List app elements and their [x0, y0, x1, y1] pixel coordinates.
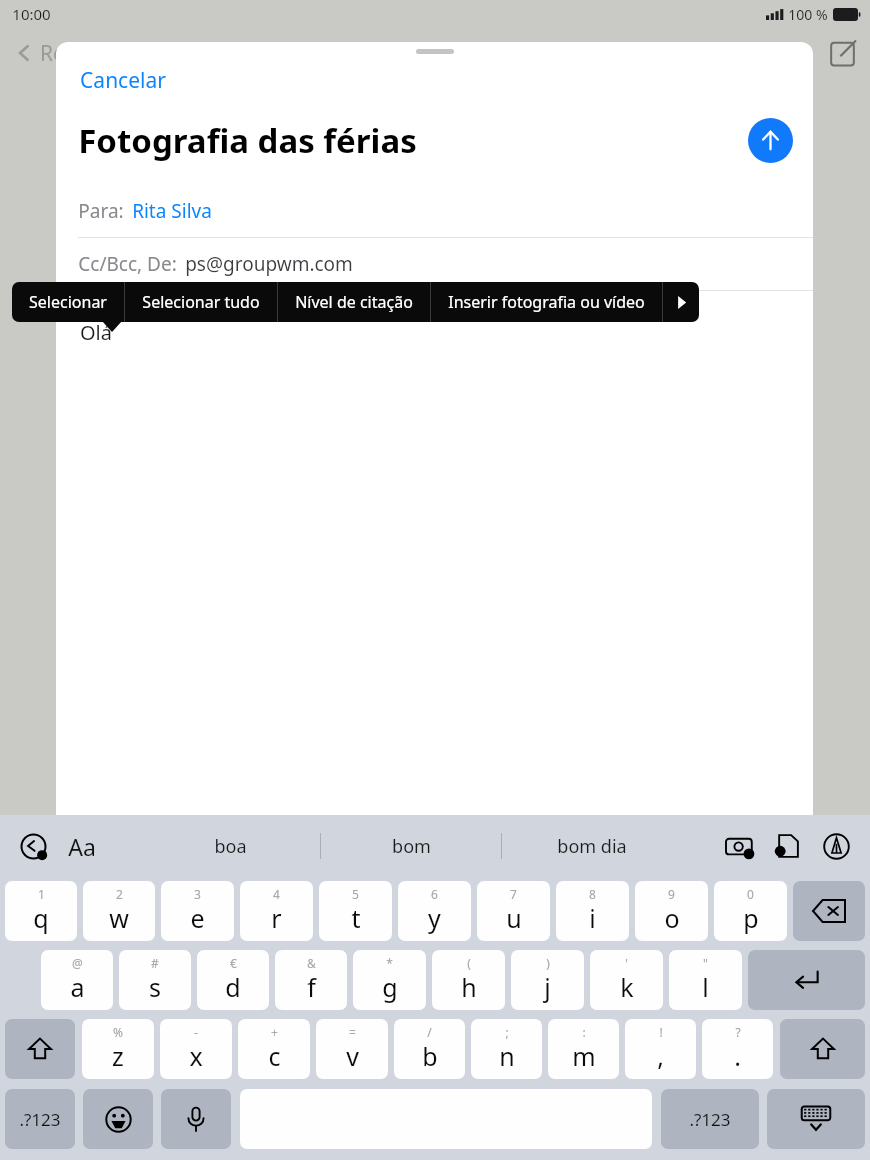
staticText: 7	[510, 886, 517, 902]
button[interactable]: (	[432, 950, 505, 1010]
button[interactable]: 1	[5, 881, 77, 941]
button[interactable]: bom	[321, 815, 501, 877]
button[interactable]: €	[197, 950, 269, 1010]
button[interactable]: @	[41, 950, 113, 1010]
button[interactable]: Emoji	[83, 1089, 153, 1149]
button[interactable]: :	[548, 1019, 619, 1079]
button[interactable]: Mais	[663, 282, 699, 322]
button[interactable]: "	[669, 950, 742, 1010]
button[interactable]: Inserir fotografia ou vídeo	[431, 282, 662, 322]
button[interactable]: +	[238, 1019, 310, 1079]
staticText: ,	[657, 1039, 664, 1073]
button[interactable]: Cc/Bcc, De:	[56, 238, 813, 290]
button[interactable]: .?123	[5, 1089, 75, 1149]
button[interactable]: Retrocesso	[793, 881, 865, 941]
button[interactable]: .?123	[661, 1089, 759, 1149]
button[interactable]: &	[275, 950, 347, 1010]
staticText: Nível de citação	[295, 291, 413, 313]
button[interactable]: #	[119, 950, 191, 1010]
staticText: ?	[735, 1024, 741, 1040]
button[interactable]: Marcação	[818, 828, 854, 864]
button[interactable]: ?	[702, 1019, 773, 1079]
button[interactable]: Documento	[770, 828, 806, 864]
staticText: 4	[273, 886, 280, 902]
staticText: boa	[214, 834, 247, 859]
staticText: v	[346, 1039, 359, 1073]
button[interactable]: 2	[83, 881, 155, 941]
staticText: ;	[505, 1024, 509, 1040]
button[interactable]: ;	[471, 1019, 542, 1079]
button[interactable]: 6	[398, 881, 471, 941]
button[interactable]: 8	[556, 881, 629, 941]
staticText: d	[225, 970, 241, 1004]
button[interactable]: Nível de citação	[278, 282, 430, 322]
staticText: :	[582, 1024, 586, 1040]
staticText: k	[620, 970, 634, 1004]
button[interactable]: 7	[477, 881, 550, 941]
button[interactable]: =	[316, 1019, 388, 1079]
staticText: Inserir fotografia ou vídeo	[448, 291, 645, 313]
button[interactable]: Anular	[16, 829, 50, 863]
staticText: +	[271, 1024, 278, 1040]
staticText: q	[33, 901, 49, 935]
button[interactable]: !	[625, 1019, 696, 1079]
button[interactable]: Selecionar tudo	[125, 282, 277, 322]
staticText: t	[351, 901, 361, 935]
staticText: p	[743, 901, 759, 935]
button[interactable]: Shift	[5, 1019, 75, 1079]
staticText: #	[151, 955, 159, 971]
button[interactable]: '	[590, 950, 663, 1010]
button[interactable]: Selecionar	[12, 282, 124, 322]
staticText: r	[271, 901, 282, 935]
button[interactable]: Ocultar teclado	[767, 1089, 865, 1149]
button[interactable]: *	[353, 950, 426, 1010]
staticText: s	[149, 970, 161, 1004]
button[interactable]: %	[82, 1019, 154, 1079]
button[interactable]: -	[160, 1019, 232, 1079]
button[interactable]: Cancelar	[78, 63, 168, 98]
staticText: n	[499, 1039, 515, 1073]
staticText: *	[386, 955, 393, 971]
button[interactable]: 4	[240, 881, 313, 941]
button[interactable]: Ditado	[161, 1089, 231, 1149]
staticText: 9	[668, 886, 675, 902]
staticText: Fotografia das férias	[78, 118, 417, 163]
staticText: x	[189, 1039, 203, 1073]
button[interactable]: boa	[140, 815, 320, 877]
button[interactable]: 3	[161, 881, 234, 941]
staticText: %	[113, 1024, 123, 1040]
button[interactable]: Enviar	[748, 118, 793, 163]
staticText: Para:	[78, 198, 124, 224]
button[interactable]: 9	[635, 881, 708, 941]
staticText: ps@groupwm.com	[185, 251, 353, 277]
staticText: "	[703, 955, 708, 971]
staticText: )	[546, 955, 550, 971]
button[interactable]: Para:	[56, 185, 813, 237]
staticText: g	[382, 970, 398, 1004]
staticText: Cancelar	[80, 66, 166, 95]
button[interactable]: Enter	[748, 950, 865, 1010]
button[interactable]: Shift	[780, 1019, 865, 1079]
button[interactable]: bom dia	[502, 815, 682, 877]
staticText: 0	[747, 886, 754, 902]
button[interactable]: 5	[319, 881, 392, 941]
staticText: =	[349, 1024, 356, 1040]
staticText: '	[625, 955, 628, 971]
button[interactable]: /	[394, 1019, 465, 1079]
staticText: a	[70, 970, 85, 1004]
staticText: b	[422, 1039, 438, 1073]
staticText: @	[72, 955, 83, 971]
button[interactable]: Aa	[64, 827, 100, 866]
staticText: Aa	[68, 831, 96, 862]
staticText: 6	[431, 886, 438, 902]
staticText: o	[664, 901, 680, 935]
staticText: y	[428, 901, 441, 935]
staticText: /	[427, 1024, 432, 1040]
staticText: 1	[38, 886, 45, 902]
button[interactable]: 0	[714, 881, 787, 941]
staticText: 8	[589, 886, 596, 902]
button[interactable]: Câmara	[722, 828, 758, 864]
button[interactable]: )	[511, 950, 584, 1010]
staticText: Selecionar	[29, 291, 107, 313]
